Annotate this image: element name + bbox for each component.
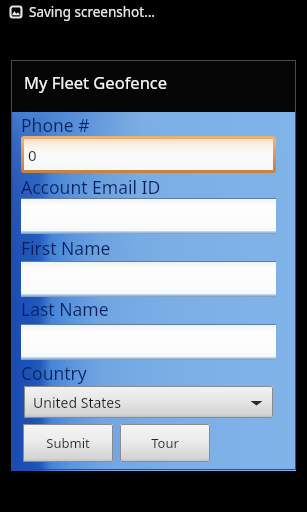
button[interactable] [21, 261, 276, 297]
other: Screenshot saved [9, 5, 23, 19]
button[interactable] [21, 324, 276, 360]
staticText: Tour [151, 434, 179, 452]
staticText: First Name [21, 236, 111, 260]
button[interactable]: Submit [23, 424, 113, 462]
button[interactable]: 0 [24, 139, 273, 170]
staticText: Submit [46, 434, 90, 452]
staticText: United States [33, 393, 121, 412]
staticText: Saving screenshot… [29, 3, 155, 21]
staticText: Country [21, 361, 87, 385]
staticText: Phone # [21, 113, 90, 137]
staticText: Account Email ID [21, 175, 161, 199]
staticText: 0 [28, 145, 37, 165]
staticText: My Fleet Geofence [24, 71, 168, 93]
button[interactable]: United States [24, 386, 273, 418]
button[interactable]: Tour [120, 424, 210, 462]
button[interactable] [21, 198, 276, 234]
staticText: Last Name [21, 297, 109, 321]
